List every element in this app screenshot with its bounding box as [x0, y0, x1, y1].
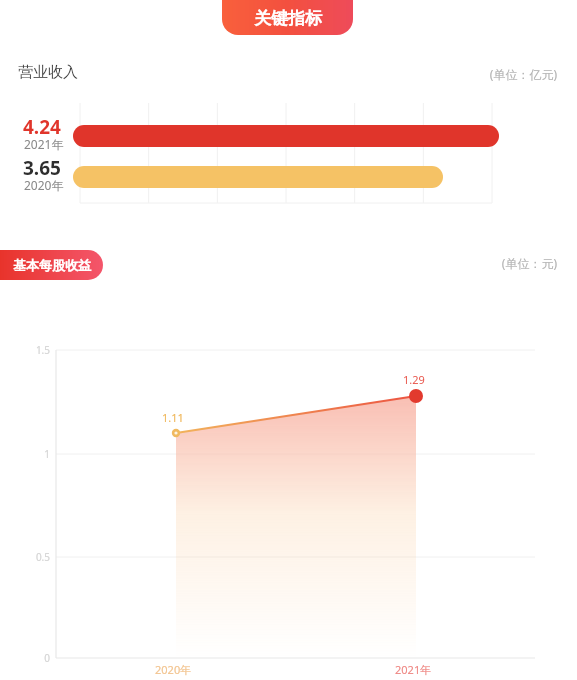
staticText: (单位：元)	[407, 255, 557, 680]
staticText: 2020年	[24, 177, 64, 193]
staticText: (单位：亿元)	[407, 66, 557, 680]
staticText: 0	[14, 651, 50, 680]
staticText: 1.29	[403, 372, 425, 387]
staticText: 2020年	[155, 662, 192, 677]
staticText: 1.11	[162, 410, 184, 425]
staticText: 3.65	[23, 155, 61, 181]
staticText: 2021年	[24, 136, 64, 152]
button[interactable]: 基本每股收益	[0, 250, 103, 280]
staticText: 1.5	[14, 343, 50, 680]
staticText: 关键指标	[254, 8, 322, 29]
button[interactable]: 关键指标	[222, 0, 353, 35]
staticText: 4.24	[23, 114, 61, 140]
staticText: 基本每股收益	[13, 257, 91, 273]
staticText: 2021年	[395, 662, 432, 677]
staticText: 1	[14, 447, 50, 680]
staticText: 0.5	[14, 550, 50, 680]
staticText: 营业收入	[18, 63, 78, 82]
